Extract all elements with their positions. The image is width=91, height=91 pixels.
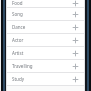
- staticText: Food: [12, 0, 72, 6]
- button[interactable]: Travelling: [7, 60, 84, 73]
- staticText: Actor: [12, 37, 72, 43]
- button[interactable]: Food: [7, 0, 84, 8]
- button[interactable]: Actor: [7, 34, 84, 47]
- staticText: Artist: [12, 50, 72, 56]
- staticText: Study: [12, 76, 72, 82]
- staticText: Travelling: [12, 63, 72, 69]
- button[interactable]: Artist: [7, 47, 84, 60]
- staticText: Song: [12, 11, 72, 17]
- button[interactable]: Song: [7, 8, 84, 21]
- button[interactable]: Study: [7, 73, 84, 86]
- button[interactable]: Dance: [7, 21, 84, 34]
- staticText: Dance: [12, 24, 72, 30]
